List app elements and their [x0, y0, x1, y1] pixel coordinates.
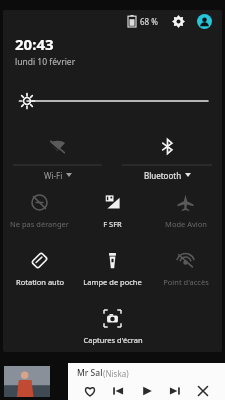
button[interactable]: F SFR: [78, 190, 147, 238]
button[interactable]: Ne pas déranger: [5, 190, 74, 238]
button[interactable]: Rotation auto: [5, 248, 74, 296]
staticText: Captures d'écran: [83, 335, 143, 345]
button[interactable]: Brightness: [17, 88, 208, 114]
staticText: Rotation auto: [16, 277, 64, 287]
button[interactable]: Mode Avion: [151, 190, 220, 238]
button[interactable]: Close: [192, 382, 214, 400]
button[interactable]: Lampe de poche: [78, 248, 147, 296]
staticText: 68 %: [140, 16, 158, 27]
button[interactable]: [4, 366, 50, 397]
staticText: Lampe de poche: [83, 277, 142, 287]
staticText: Mr Sal: [77, 367, 103, 379]
staticText: Wi-Fi: [44, 170, 63, 181]
button[interactable]: Previous: [107, 382, 129, 400]
staticText: lundi 10 février: [15, 56, 76, 68]
staticText: 20:43: [15, 34, 54, 54]
button[interactable]: Settings: [168, 11, 188, 31]
staticText: Ne pas déranger: [10, 219, 69, 229]
staticText: Point d'accès: [163, 277, 209, 287]
button[interactable]: Play: [136, 382, 158, 400]
staticText: Bluetooth: [144, 170, 182, 181]
button[interactable]: Next: [164, 382, 186, 400]
button[interactable]: Point d'accès: [151, 248, 220, 296]
button[interactable]: Favourite: [79, 382, 101, 400]
staticText: F SFR: [103, 219, 122, 229]
button[interactable]: Captures d'écran: [78, 306, 147, 352]
staticText: (Niska): [103, 368, 129, 379]
staticText: Mode Avion: [165, 219, 207, 229]
button[interactable]: Wi-Fi: [13, 128, 102, 184]
button[interactable]: Bluetooth: [122, 128, 212, 184]
button[interactable]: User account: [194, 11, 214, 31]
